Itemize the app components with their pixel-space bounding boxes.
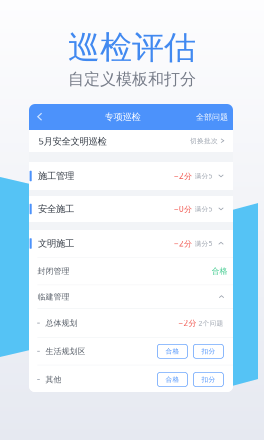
button[interactable]: 安全施工: [29, 196, 233, 222]
button[interactable]: 扣分: [193, 372, 223, 386]
staticText: 自定义模板和打分: [68, 69, 196, 89]
staticText: 满分5: [194, 205, 212, 213]
staticText: −2分: [174, 238, 192, 249]
button[interactable]: 5月安全文明巡检: [29, 130, 233, 152]
staticText: 合格: [211, 266, 227, 276]
button[interactable]: 全部问题: [196, 107, 228, 127]
button[interactable]: 施工管理: [29, 162, 233, 190]
staticText: 临建管理: [37, 292, 69, 302]
staticText: 满分5: [194, 239, 212, 248]
staticText: 扣分: [201, 347, 215, 355]
button[interactable]: 封闭管理: [29, 258, 233, 285]
staticText: −0分: [174, 204, 192, 214]
staticText: 合格: [165, 375, 179, 384]
button[interactable]: 合格: [157, 372, 187, 386]
staticText: 巡检评估: [68, 28, 196, 67]
staticText: 总体规划: [45, 318, 77, 328]
staticText: 5月安全文明巡检: [38, 135, 106, 147]
staticText: 生活规划区: [45, 346, 85, 356]
staticText: 专项巡检: [104, 111, 140, 123]
staticText: 封闭管理: [37, 266, 69, 276]
staticText: 切换批次: [190, 137, 218, 145]
staticText: 扣分: [201, 375, 215, 384]
staticText: −2分: [174, 171, 192, 181]
button[interactable]: 返回: [31, 106, 49, 128]
button[interactable]: 临建管理: [29, 285, 233, 308]
staticText: 满分5: [194, 172, 212, 180]
staticText: 文明施工: [38, 238, 74, 249]
button[interactable]: 扣分: [193, 344, 223, 358]
button[interactable]: 合格: [157, 344, 187, 358]
staticText: 全部问题: [196, 112, 228, 122]
staticText: 施工管理: [38, 170, 74, 182]
staticText: 安全施工: [38, 203, 74, 215]
staticText: 合格: [165, 347, 179, 355]
staticText: −2分: [178, 318, 196, 328]
staticText: 2个问题: [198, 319, 223, 328]
button[interactable]: 文明施工: [29, 230, 233, 257]
staticText: 其他: [45, 375, 61, 384]
